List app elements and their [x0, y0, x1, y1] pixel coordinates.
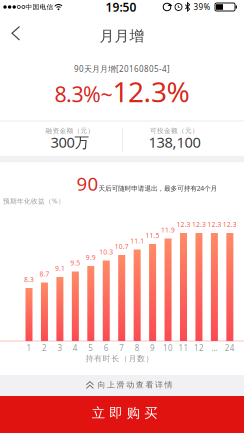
staticText: 10 [163, 343, 173, 353]
staticText: 12.3% [112, 73, 189, 110]
staticText: 持有时长（月数） [85, 354, 154, 363]
staticText: 融资金额（元） [45, 127, 94, 135]
staticText: 4 [73, 343, 78, 353]
staticText: 7 [119, 343, 124, 353]
staticText: 11.1 [130, 237, 144, 245]
staticText: 300万 [50, 132, 89, 152]
staticText: 90 [77, 171, 99, 196]
staticText: 8.3%~ [54, 80, 112, 108]
staticText: 24 [225, 343, 235, 353]
staticText: 12 [194, 343, 204, 353]
staticText: 90天月月增[20160805-4] [74, 63, 170, 74]
staticText: 9.9 [86, 253, 96, 262]
staticText: 2 [42, 343, 47, 353]
staticText: 11.9 [161, 226, 175, 234]
staticText: 天后可随时申请退出，最多可持有24个月 [99, 184, 217, 193]
staticText: 138,100 [148, 132, 200, 152]
staticText: 预期年化收益（%） [3, 197, 65, 205]
staticText: 12.3 [176, 220, 190, 229]
staticText: 12.3 [207, 220, 221, 229]
staticText: 12.3 [223, 220, 237, 229]
staticText: 9.1 [55, 264, 65, 273]
staticText: 9.5 [70, 259, 80, 267]
staticText: 10.7 [115, 242, 129, 251]
staticText: 11 [178, 343, 188, 353]
staticText: 19:50 [105, 0, 136, 15]
staticText: 中国电信 [25, 3, 53, 11]
staticText: 1 [26, 343, 31, 353]
staticText: 8.3 [24, 275, 34, 284]
staticText: 8 [135, 343, 140, 353]
staticText: 可投金额（元） [150, 127, 199, 135]
staticText: 39% [193, 2, 210, 12]
staticText: 立即购买 [92, 405, 157, 421]
staticText: 8.7 [39, 270, 49, 278]
staticText: 10.3 [99, 248, 113, 256]
staticText: 11.5 [146, 231, 160, 240]
staticText: 12.3 [192, 220, 206, 229]
staticText: 9 [150, 343, 155, 353]
staticText: 向上滑动查看详情 [97, 380, 173, 390]
staticText: 月月增 [99, 27, 144, 45]
staticText: 6 [104, 343, 109, 353]
staticText: 5 [88, 343, 93, 353]
staticText: ... [211, 343, 217, 353]
staticText: 3 [57, 343, 62, 353]
